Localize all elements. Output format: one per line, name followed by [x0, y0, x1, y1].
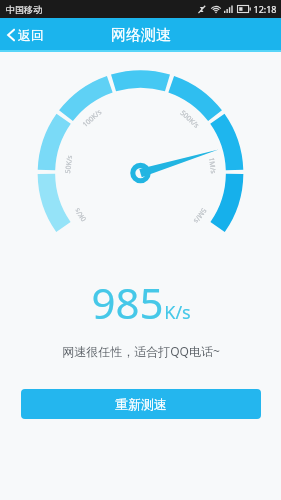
staticText: 5M/s: [191, 206, 209, 225]
staticText: 12:18: [253, 3, 277, 15]
staticText: 100K/s: [80, 107, 104, 130]
staticText: 50K/s: [63, 154, 75, 174]
staticText: 返回: [18, 27, 44, 43]
staticText: 1M/s: [206, 156, 218, 174]
staticText: 中国移动: [6, 4, 42, 15]
button[interactable]: Back: [0, 22, 56, 48]
button[interactable]: 重新测速: [21, 389, 261, 419]
staticText: 网速很任性，适合打QQ电话~: [62, 343, 220, 359]
staticText: 网络测速: [111, 26, 171, 45]
staticText: 500K/s: [177, 108, 201, 131]
staticText: 0K/s: [72, 206, 89, 224]
staticText: 重新测速: [115, 396, 167, 412]
other: Back: [7, 28, 15, 42]
staticText: 985: [91, 274, 164, 331]
staticText: K/s: [164, 300, 191, 325]
